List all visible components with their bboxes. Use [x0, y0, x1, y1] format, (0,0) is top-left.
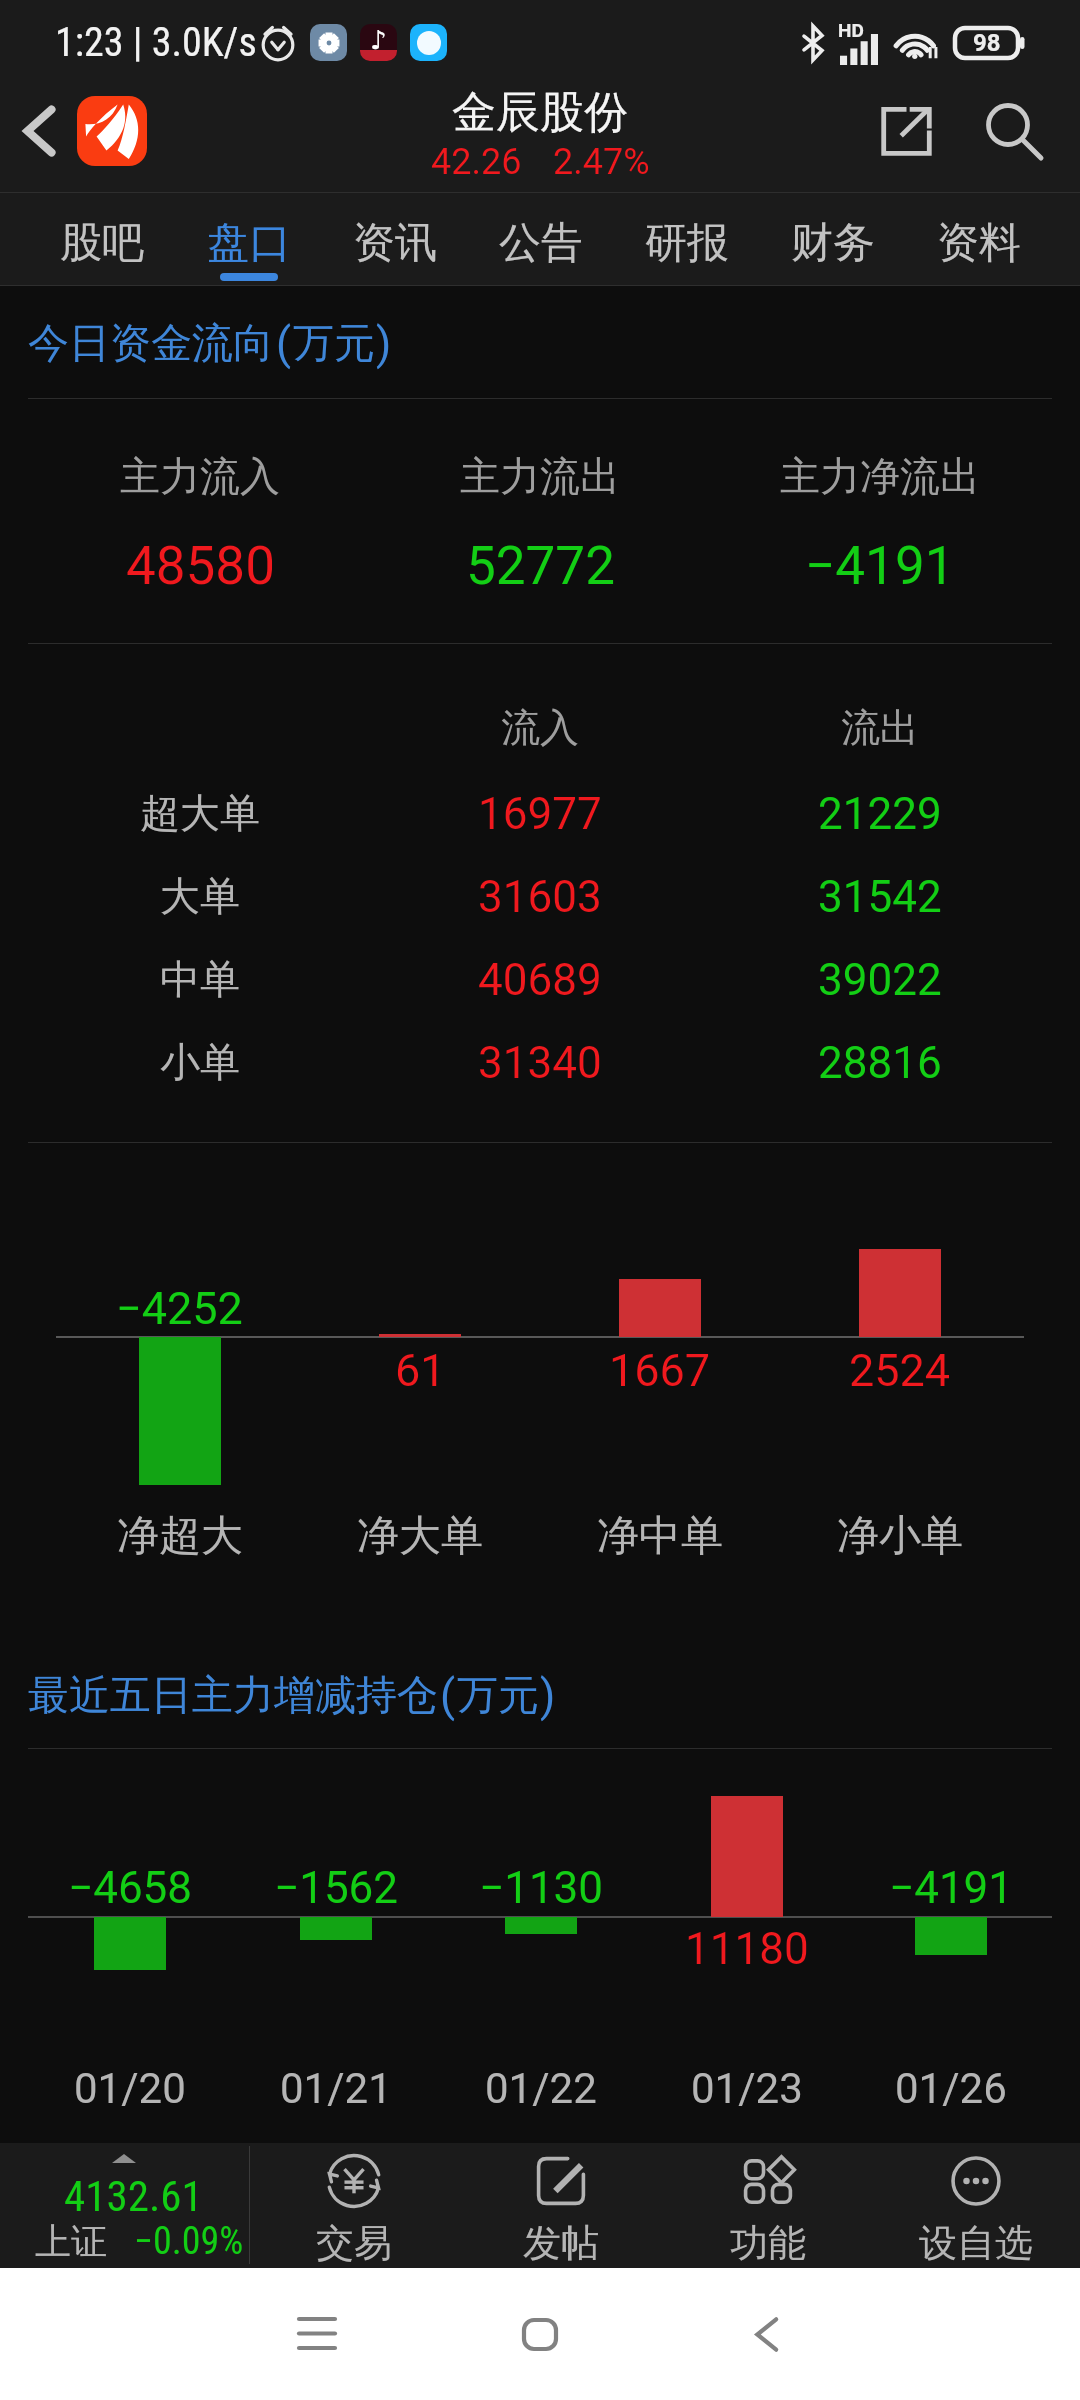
- button[interactable]: 功能: [664, 2143, 872, 2268]
- staticText: 主力流入: [120, 451, 280, 501]
- staticText: 小单: [160, 1037, 240, 1087]
- button[interactable]: 盘口: [175, 192, 322, 286]
- button[interactable]: Back: [0, 77, 77, 184]
- staticText: 01/21: [280, 2064, 392, 2113]
- staticText: 研报: [645, 217, 729, 270]
- staticText: 1667: [609, 1344, 711, 1397]
- staticText: 01/22: [485, 2064, 597, 2113]
- staticText: 61: [395, 1344, 446, 1397]
- staticText: −1562: [274, 1862, 399, 1914]
- staticText: 1:23 | 3.0K/s: [55, 19, 257, 66]
- staticText: 主力净流出: [780, 451, 980, 501]
- staticText: 流入: [501, 703, 579, 752]
- staticText: 净中单: [597, 1510, 723, 1563]
- staticText: 功能: [730, 2219, 806, 2267]
- staticText: 31603: [478, 871, 602, 923]
- staticText: 2.47%: [553, 141, 650, 183]
- staticText: 主力流出: [460, 451, 620, 501]
- button[interactable]: 研报: [614, 192, 760, 286]
- staticText: ♪: [370, 25, 387, 55]
- staticText: (: [440, 1670, 456, 1722]
- staticText: 21229: [818, 788, 942, 840]
- staticText: 净超大: [117, 1510, 243, 1563]
- staticText: −0.09%: [134, 2219, 244, 2264]
- staticText: 28816: [818, 1037, 942, 1089]
- button[interactable]: 资讯: [322, 192, 468, 286]
- staticText: −4191: [805, 535, 955, 597]
- staticText: 盘口: [207, 217, 291, 270]
- staticText: 超大单: [140, 788, 260, 838]
- staticText: 40689: [478, 954, 602, 1006]
- staticText: 52772: [466, 535, 615, 597]
- staticText: −4252: [116, 1282, 243, 1335]
- staticText: ): [540, 1670, 556, 1722]
- staticText: 今日资金流向: [28, 318, 274, 370]
- staticText: 资料: [937, 217, 1021, 270]
- button[interactable]: 交易: [250, 2143, 457, 2268]
- staticText: −4191: [889, 1862, 1014, 1914]
- button[interactable]: Share: [856, 77, 956, 184]
- staticText: −4658: [68, 1862, 193, 1914]
- button[interactable]: Eastmoney: [77, 96, 147, 166]
- staticText: 31542: [818, 871, 942, 923]
- button[interactable]: Back: [694, 2268, 839, 2400]
- staticText: 01/23: [691, 2064, 803, 2113]
- button[interactable]: 资料: [906, 192, 1052, 286]
- staticText: 中单: [160, 954, 240, 1004]
- button[interactable]: Search: [956, 77, 1072, 184]
- staticText: HD: [838, 19, 864, 41]
- staticText: 98: [973, 29, 1001, 57]
- staticText: 交易: [316, 2219, 392, 2267]
- staticText: 上证: [35, 2219, 107, 2264]
- staticText: 公告: [499, 217, 583, 270]
- staticText: 资讯: [353, 217, 437, 270]
- staticText: 净大单: [357, 1510, 483, 1563]
- staticText: 16977: [478, 788, 602, 840]
- staticText: 万元: [293, 318, 375, 370]
- staticText: (: [276, 318, 292, 370]
- staticText: 最近五日主力增减持仓: [28, 1670, 438, 1722]
- staticText: 财务: [791, 217, 875, 270]
- staticText: 11180: [685, 1923, 809, 1975]
- staticText: 4132.61: [64, 2171, 203, 2221]
- staticText: 流出: [841, 703, 919, 752]
- staticText: 48580: [126, 535, 275, 597]
- staticText: 42.26: [431, 141, 522, 183]
- button[interactable]: 财务: [760, 192, 906, 286]
- button[interactable]: 4132.61: [0, 2143, 249, 2268]
- button[interactable]: Home: [467, 2268, 612, 2400]
- staticText: 设自选: [919, 2219, 1033, 2267]
- staticText: 31340: [478, 1037, 602, 1089]
- staticText: 39022: [818, 954, 942, 1006]
- button[interactable]: 设自选: [872, 2143, 1080, 2268]
- button[interactable]: Recents: [244, 2268, 389, 2400]
- staticText: 01/20: [74, 2064, 186, 2113]
- button[interactable]: 公告: [468, 192, 614, 286]
- staticText: 万元: [457, 1670, 539, 1722]
- staticText: 发帖: [523, 2219, 599, 2267]
- staticText: 01/26: [895, 2064, 1007, 2113]
- staticText: 股吧: [60, 217, 144, 270]
- button[interactable]: 股吧: [28, 192, 175, 286]
- button[interactable]: 发帖: [457, 2143, 664, 2268]
- staticText: 金辰股份: [452, 85, 628, 140]
- staticText: ): [376, 318, 392, 370]
- staticText: 净小单: [837, 1510, 963, 1563]
- staticText: −1130: [479, 1862, 604, 1914]
- staticText: 2524: [849, 1344, 951, 1397]
- staticText: 大单: [160, 871, 240, 921]
